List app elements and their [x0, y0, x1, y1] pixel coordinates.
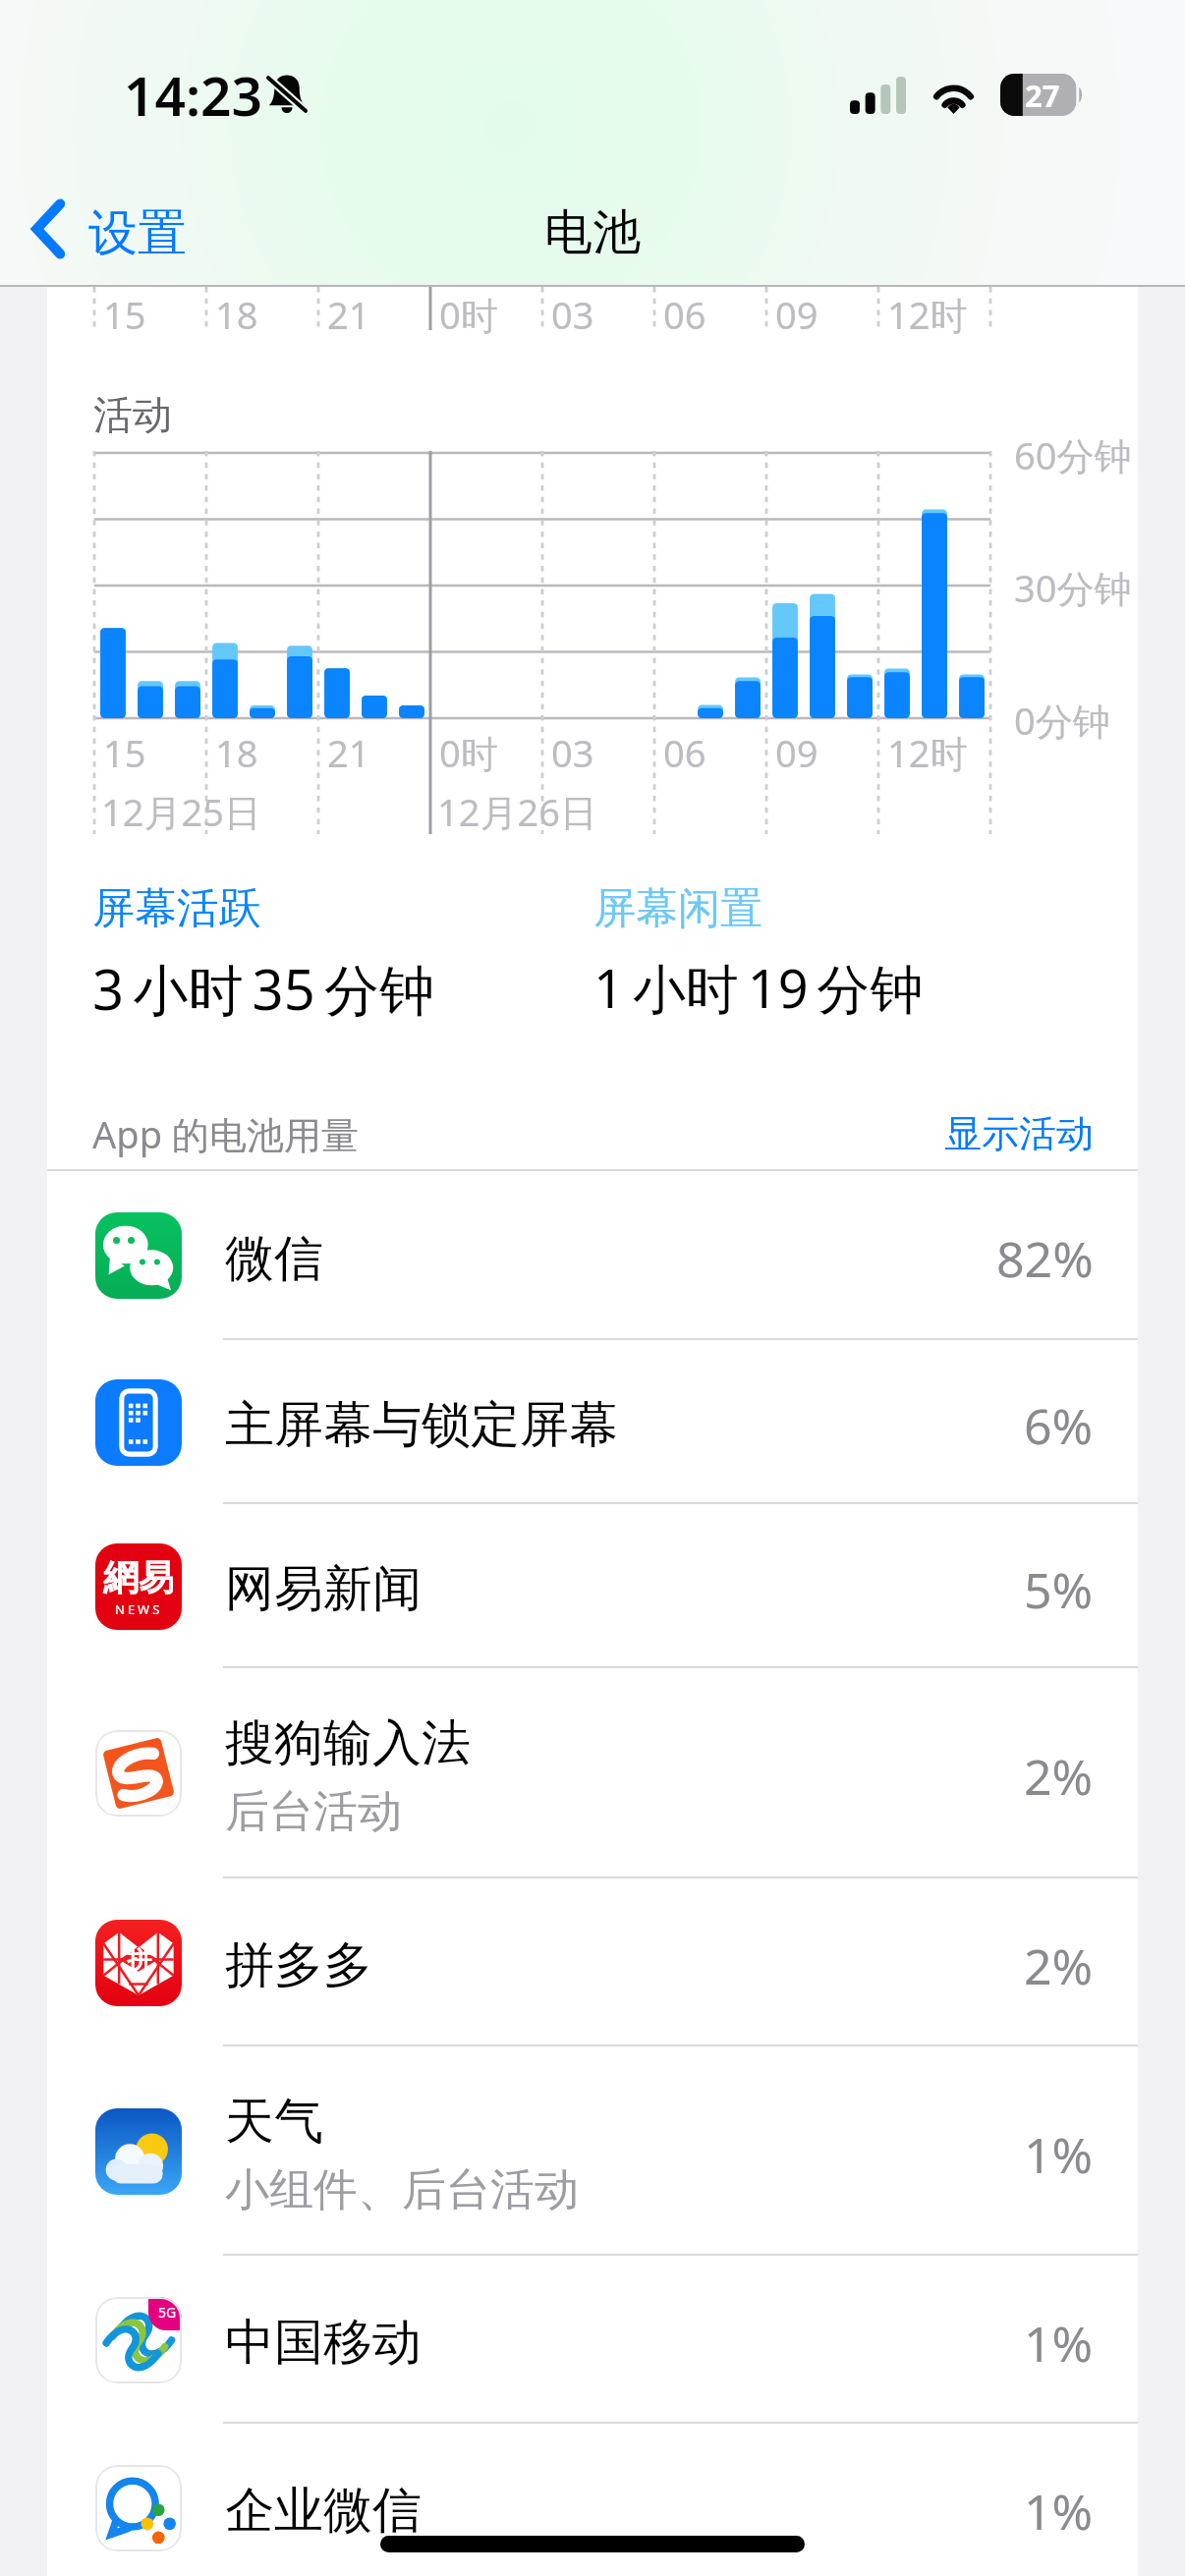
staticText: 主屏幕与锁定屏幕	[225, 1394, 618, 1456]
staticText: 27	[1025, 75, 1060, 116]
staticText: 2%	[1024, 1743, 1094, 1810]
staticText: 14:23	[124, 58, 263, 132]
staticText: 天气	[225, 2091, 323, 2153]
staticText: 60分钟	[1014, 429, 1132, 480]
staticText: 活动	[93, 390, 172, 439]
staticText: 小组件、后台活动	[225, 2162, 579, 2218]
staticText: 5%	[1024, 1556, 1094, 1623]
staticText: 拼多多	[225, 1934, 372, 1996]
button[interactable]: 显示活动	[942, 1104, 1096, 1163]
staticText: 1 小时 19 分钟	[593, 951, 924, 1024]
button[interactable]: 網易	[0, 1504, 1185, 1668]
staticText: 03	[551, 289, 594, 340]
staticText: 12月25日	[101, 786, 261, 837]
staticText: 03	[551, 727, 594, 778]
staticText: 屏幕闲置	[593, 882, 762, 935]
staticText: 微信	[225, 1228, 323, 1290]
button[interactable]: 设置	[0, 184, 206, 273]
staticText: 12时	[887, 289, 968, 340]
staticText: 06	[663, 289, 706, 340]
staticText: 企业微信	[225, 2480, 422, 2542]
staticText: 设置	[88, 202, 187, 264]
staticText: 1%	[1024, 2310, 1094, 2377]
staticText: 82%	[996, 1225, 1094, 1292]
staticText: 09	[775, 289, 818, 340]
other: Battery 27 percent	[1000, 74, 1083, 116]
staticText: 中国移动	[225, 2312, 422, 2374]
staticText: 1%	[1024, 2121, 1094, 2188]
staticText: 網易	[103, 1555, 174, 1599]
staticText: 09	[775, 727, 818, 778]
staticText: 12时	[887, 727, 968, 778]
staticText: 3 小时 35 分钟	[92, 951, 434, 1026]
staticText: 2%	[1024, 1932, 1094, 1999]
staticText: 1%	[1024, 2478, 1094, 2545]
staticText: 6%	[1024, 1392, 1094, 1459]
staticText: 06	[663, 727, 706, 778]
staticText: 15	[103, 289, 146, 340]
button[interactable]: 微信	[0, 1171, 1185, 1340]
staticText: 0分钟	[1014, 695, 1110, 746]
staticText: 18	[215, 289, 258, 340]
staticText: 5G	[158, 2303, 177, 2322]
staticText: NEWS	[115, 1600, 163, 1618]
staticText: App 的电池用量	[92, 1108, 359, 1159]
staticText: 显示活动	[944, 1110, 1094, 1157]
staticText: 0时	[439, 289, 498, 340]
staticText: 后台活动	[225, 1784, 402, 1840]
staticText: 15	[103, 727, 146, 778]
button[interactable]: 搜狗输入法	[0, 1668, 1185, 1878]
button[interactable]: 拼	[0, 1878, 1185, 2046]
staticText: 12月26日	[437, 786, 597, 837]
staticText: 21	[327, 727, 370, 778]
staticText: 拼	[127, 1944, 151, 1975]
button[interactable]: 天气	[0, 2046, 1185, 2256]
staticText: 搜狗输入法	[225, 1712, 471, 1774]
button[interactable]: 5G	[0, 2256, 1185, 2424]
staticText: 18	[215, 727, 258, 778]
staticText: 电池	[544, 202, 641, 263]
staticText: 0时	[439, 727, 498, 778]
staticText: 屏幕活跃	[92, 882, 261, 935]
staticText: 30分钟	[1014, 562, 1132, 613]
button[interactable]: 主屏幕与锁定屏幕	[0, 1340, 1185, 1504]
staticText: 21	[327, 289, 370, 340]
staticText: 网易新闻	[225, 1558, 422, 1620]
button[interactable]: 企业微信	[0, 2424, 1185, 2576]
